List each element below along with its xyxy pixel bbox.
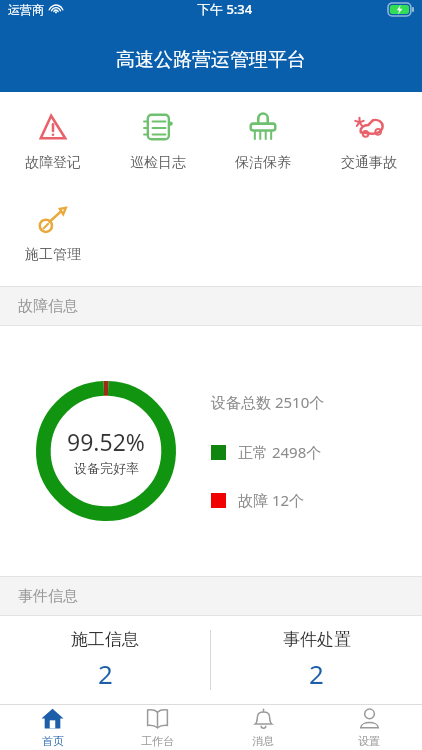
other: shovel xyxy=(36,202,70,236)
button[interactable]: 消息 xyxy=(210,705,316,750)
staticText: 首页 xyxy=(42,734,64,748)
other: brush xyxy=(246,110,280,144)
staticText: 99.52% xyxy=(67,426,145,457)
staticText: 事件信息 xyxy=(18,587,78,606)
staticText: 故障登记 xyxy=(25,154,81,172)
button[interactable]: shovel xyxy=(0,198,105,268)
staticText: 施工信息 xyxy=(71,629,139,650)
staticText: 下午 5:34 xyxy=(197,0,253,18)
staticText: 施工管理 xyxy=(25,246,81,264)
staticText: 运营商 xyxy=(8,2,44,17)
button[interactable]: 设置 xyxy=(316,705,422,750)
staticText: 交通事故 xyxy=(341,154,397,172)
staticText: 高速公路营运管理平台 xyxy=(116,48,306,72)
staticText: 2 xyxy=(309,656,324,691)
staticText: 正常 2498个 xyxy=(238,442,322,462)
staticText: 保洁保养 xyxy=(235,154,291,172)
other: crash xyxy=(352,110,386,144)
staticText: 工作台 xyxy=(141,734,174,748)
other: log xyxy=(141,110,175,144)
button[interactable]: crash xyxy=(316,106,422,176)
button[interactable]: brush xyxy=(210,106,316,176)
staticText: 事件处置 xyxy=(283,629,351,650)
button[interactable]: warn xyxy=(0,106,105,176)
button[interactable]: 事件处置 xyxy=(211,623,422,697)
button[interactable]: 施工信息 xyxy=(0,623,210,697)
staticText: 设置 xyxy=(358,734,380,748)
staticText: 故障 12个 xyxy=(238,490,305,510)
other: warn xyxy=(36,110,70,144)
staticText: 故障信息 xyxy=(18,297,78,316)
button[interactable]: 首页 xyxy=(0,705,105,750)
button[interactable]: log xyxy=(105,106,210,176)
staticText: 设备完好率 xyxy=(74,460,139,476)
button[interactable]: 工作台 xyxy=(105,705,210,750)
staticText: 2 xyxy=(98,656,113,691)
staticText: 消息 xyxy=(252,734,274,748)
staticText: 巡检日志 xyxy=(130,154,186,172)
staticText: 设备总数 2510个 xyxy=(211,392,325,412)
